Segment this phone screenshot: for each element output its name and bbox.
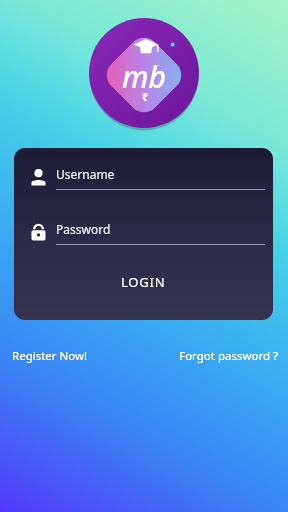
button[interactable]: LOGIN bbox=[14, 265, 273, 299]
other: Username bbox=[29, 168, 48, 187]
staticText: mb bbox=[122, 56, 167, 97]
staticText: LOGIN bbox=[121, 273, 166, 291]
staticText: Register Now! bbox=[12, 348, 88, 364]
button[interactable]: Forgot password ? bbox=[177, 345, 280, 367]
staticText: Username bbox=[56, 166, 115, 182]
button[interactable]: Username bbox=[25, 164, 265, 190]
other: Password bbox=[29, 223, 48, 242]
staticText: Forgot password ? bbox=[179, 348, 278, 364]
staticText: Password bbox=[56, 221, 111, 237]
button[interactable]: Register Now! bbox=[10, 345, 90, 367]
staticText: ₹ bbox=[142, 89, 149, 104]
button[interactable]: Password bbox=[25, 219, 265, 245]
